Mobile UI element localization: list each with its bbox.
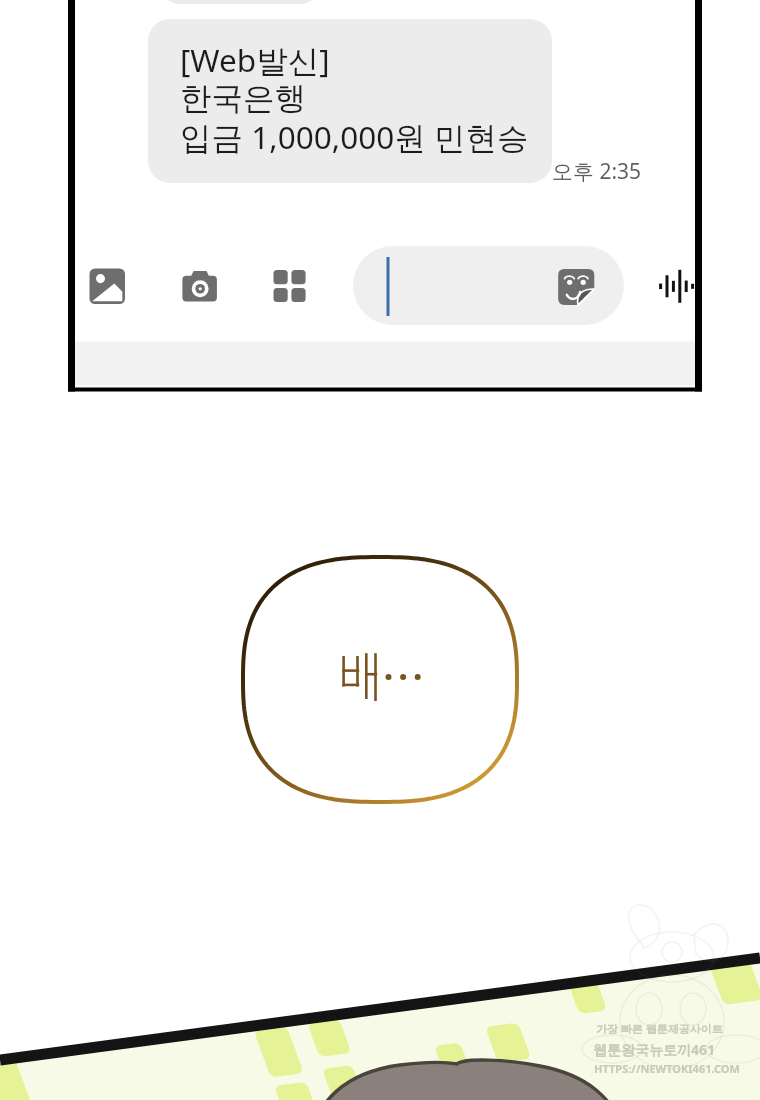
staticText: 가장 빠른 웹툰제공사이트 (596, 1021, 723, 1036)
button[interactable]: Stickers (550, 261, 602, 313)
button[interactable]: Message input field (353, 246, 624, 325)
staticText: 오후 2:35 (552, 157, 642, 186)
staticText: [Web발신] 한국은행 입금 1,000,000원 민현승 (180, 38, 529, 158)
button[interactable]: Voice message (655, 263, 699, 311)
button[interactable]: Gallery (80, 259, 136, 315)
button[interactable]: More options (262, 259, 318, 315)
staticText: HTTPS://NEWTOKI461.COM (594, 1061, 740, 1076)
button[interactable]: Camera (172, 259, 228, 315)
staticText: 웹툰왕국뉴토끼461 (593, 1040, 716, 1059)
